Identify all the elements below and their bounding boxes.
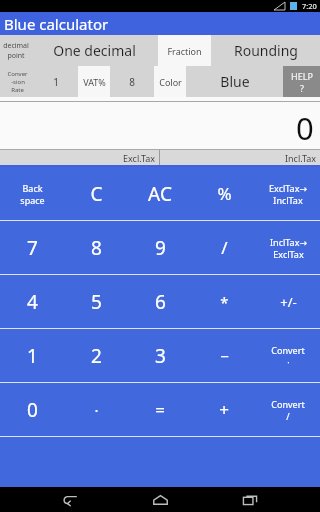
button[interactable]: 1 xyxy=(34,66,78,97)
staticText: ExclTax xyxy=(273,248,304,260)
staticText: 7 xyxy=(27,235,38,261)
staticText: point xyxy=(7,51,25,61)
button[interactable]: · xyxy=(64,383,128,436)
staticText: + xyxy=(219,398,229,421)
staticText: 9 xyxy=(155,235,166,261)
button[interactable]: 8 xyxy=(64,221,128,274)
staticText: 0 xyxy=(27,397,38,423)
staticText: C xyxy=(90,181,103,207)
button[interactable]: Home xyxy=(140,487,180,512)
button[interactable]: Rounding xyxy=(211,35,320,66)
button[interactable]: Excl.Tax xyxy=(0,150,159,165)
button[interactable]: = xyxy=(128,383,192,436)
staticText: space xyxy=(20,194,45,206)
button[interactable]: AC xyxy=(128,167,192,220)
button[interactable]: Fraction xyxy=(158,35,211,66)
button[interactable]: + xyxy=(192,383,256,436)
staticText: Color xyxy=(159,76,182,88)
staticText: InclTax→ xyxy=(270,236,307,248)
staticText: 8 xyxy=(129,75,135,89)
staticText: 3 xyxy=(155,343,166,369)
button[interactable]: Convert xyxy=(256,383,320,436)
staticText: 7:20 xyxy=(302,1,317,11)
staticText: · xyxy=(287,356,290,368)
staticText: 0 xyxy=(296,107,314,149)
button[interactable]: 7 xyxy=(0,221,64,274)
button[interactable]: 0 xyxy=(0,383,64,436)
staticText: 5 xyxy=(91,289,102,315)
staticText: Blue xyxy=(220,72,250,91)
staticText: Convert xyxy=(271,344,305,356)
button[interactable]: − xyxy=(192,329,256,382)
staticText: InclTax xyxy=(273,194,303,206)
staticText: Conver xyxy=(7,70,28,78)
staticText: VAT% xyxy=(83,76,106,88)
staticText: * xyxy=(220,292,229,312)
staticText: / xyxy=(286,410,290,422)
staticText: 8 xyxy=(91,235,102,261)
staticText: − xyxy=(220,346,229,366)
button[interactable]: Convert xyxy=(256,329,320,382)
button[interactable]: Back xyxy=(0,167,64,220)
staticText: = xyxy=(155,398,165,421)
staticText: 2 xyxy=(91,343,102,369)
staticText: % xyxy=(217,182,232,205)
staticText: 6 xyxy=(155,289,166,315)
staticText: Fraction xyxy=(167,45,202,57)
button[interactable]: 2 xyxy=(64,329,128,382)
staticText: +/- xyxy=(280,293,297,311)
button[interactable]: 5 xyxy=(64,275,128,328)
button[interactable]: 6 xyxy=(128,275,192,328)
staticText: One decimal xyxy=(53,41,136,60)
staticText: 4 xyxy=(27,289,38,315)
button[interactable]: Conver xyxy=(0,66,34,97)
button[interactable]: 1 xyxy=(0,329,64,382)
button[interactable]: Back xyxy=(50,487,90,512)
staticText: decimal xyxy=(3,41,29,51)
button[interactable]: InclTax→ xyxy=(256,221,320,274)
button[interactable]: HELP xyxy=(283,66,320,97)
button[interactable]: Color xyxy=(154,66,186,97)
staticText: Convert xyxy=(271,398,305,410)
staticText: Blue calculator xyxy=(4,14,109,34)
button[interactable]: 3 xyxy=(128,329,192,382)
staticText: Excl.Tax xyxy=(123,152,156,164)
staticText: Incl.Tax xyxy=(285,152,317,164)
button[interactable]: C xyxy=(64,167,128,220)
button[interactable]: 9 xyxy=(128,221,192,274)
staticText: HELP xyxy=(291,70,313,82)
staticText: · xyxy=(94,400,99,420)
staticText: ExclTax→ xyxy=(269,182,307,194)
button[interactable]: 4 xyxy=(0,275,64,328)
button[interactable]: * xyxy=(192,275,256,328)
staticText: Rounding xyxy=(234,41,298,60)
staticText: / xyxy=(221,236,228,259)
button[interactable]: Recent apps xyxy=(230,487,270,512)
staticText: AC xyxy=(148,181,172,207)
button[interactable]: Incl.Tax xyxy=(160,150,320,165)
staticText: Back xyxy=(22,182,43,194)
staticText: -sion xyxy=(11,78,25,86)
staticText: Rate xyxy=(11,86,24,94)
button[interactable]: / xyxy=(192,221,256,274)
button[interactable]: VAT% xyxy=(78,66,110,97)
button[interactable]: +/- xyxy=(256,275,320,328)
button[interactable]: % xyxy=(192,167,256,220)
button[interactable]: One decimal xyxy=(31,35,158,66)
staticText: 1 xyxy=(53,75,59,89)
button[interactable]: 8 xyxy=(110,66,154,97)
button[interactable]: decimal xyxy=(0,35,31,66)
button[interactable]: ExclTax→ xyxy=(256,167,320,220)
button[interactable]: Blue xyxy=(186,66,283,97)
staticText: ? xyxy=(300,82,304,94)
staticText: 1 xyxy=(27,343,38,369)
